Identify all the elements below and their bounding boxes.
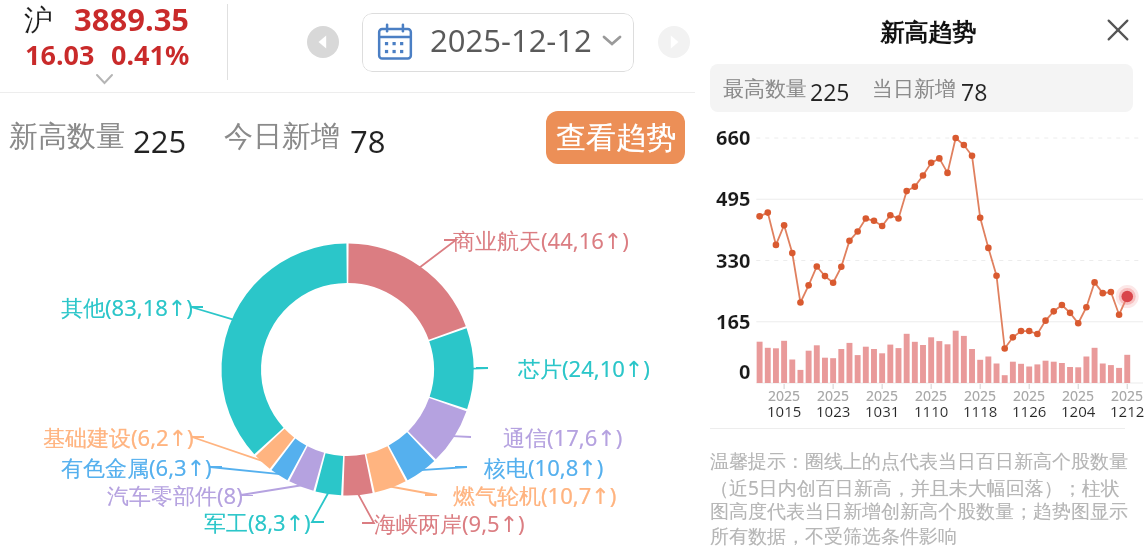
staticText: 图高度代表当日新增创新高个股数量；趋势图显示 [710, 500, 1128, 524]
button[interactable]: Next day [658, 26, 690, 58]
staticText: 78 [961, 76, 988, 107]
button[interactable]: 沪 [0, 0, 227, 88]
staticText: 汽车零部件(8) [107, 480, 243, 510]
staticText: 芯片(24,10↑) [518, 353, 650, 383]
button[interactable]: 查看趋势 [546, 111, 685, 164]
staticText: 1126 [1012, 401, 1047, 421]
staticText: 0.41% [111, 36, 190, 73]
staticText: 核电(10,8↑) [484, 452, 604, 482]
staticText: 基础建设(6,2↑) [43, 422, 194, 452]
staticText: 当日新增 [872, 76, 956, 102]
staticText: 新高数量 [9, 118, 125, 155]
staticText: 660 [716, 124, 751, 151]
staticText: 2025 [1062, 386, 1095, 405]
button[interactable]: Previous day [307, 26, 339, 58]
staticText: 1023 [816, 401, 851, 421]
staticText: 所有数据，不受筛选条件影响 [710, 525, 957, 548]
staticText: 2025-12-12 [430, 19, 592, 61]
staticText: 78 [350, 120, 386, 162]
staticText: 1204 [1061, 401, 1096, 421]
staticText: 1015 [767, 401, 802, 421]
staticText: 商业航天(44,16↑) [453, 225, 629, 255]
staticText: 3889.35 [74, 0, 190, 40]
staticText: 16.03 [25, 36, 95, 73]
staticText: 其他(83,18↑) [61, 292, 193, 322]
staticText: 温馨提示：圈线上的点代表当日百日新高个股数量 [710, 450, 1128, 474]
staticText: 今日新增 [224, 118, 340, 155]
staticText: 1110 [914, 401, 949, 421]
staticText: 225 [810, 76, 850, 107]
staticText: 1212 [1110, 401, 1145, 421]
staticText: 2025 [915, 386, 948, 405]
staticText: 225 [133, 120, 187, 162]
staticText: 燃气轮机(10,7↑) [453, 480, 617, 510]
staticText: （近5日内创百日新高，并且未大幅回落）；柱状 [710, 475, 1120, 501]
staticText: 165 [716, 308, 751, 335]
staticText: 2025 [1111, 386, 1144, 405]
staticText: 2025 [1013, 386, 1046, 405]
staticText: 最高数量 [723, 76, 807, 102]
staticText: 新高趋势 [880, 18, 976, 48]
staticText: 查看趋势 [556, 119, 676, 157]
staticText: 沪 [24, 2, 53, 39]
staticText: 2025 [866, 386, 899, 405]
staticText: 1118 [963, 401, 998, 421]
staticText: 通信(17,6↑) [503, 422, 623, 452]
staticText: 海峡两岸(9,5↑) [374, 508, 525, 538]
staticText: 2025 [768, 386, 801, 405]
staticText: 495 [716, 185, 751, 212]
staticText: 2025 [964, 386, 997, 405]
staticText: 军工(8,3↑) [204, 507, 311, 537]
staticText: 0 [739, 358, 751, 385]
button[interactable]: Close [1100, 12, 1136, 48]
staticText: 2025 [817, 386, 850, 405]
staticText: 330 [716, 247, 751, 274]
staticText: 1031 [865, 401, 900, 421]
staticText: 有色金属(6,3↑) [61, 452, 212, 482]
button[interactable]: 2025-12-12 [362, 13, 634, 72]
